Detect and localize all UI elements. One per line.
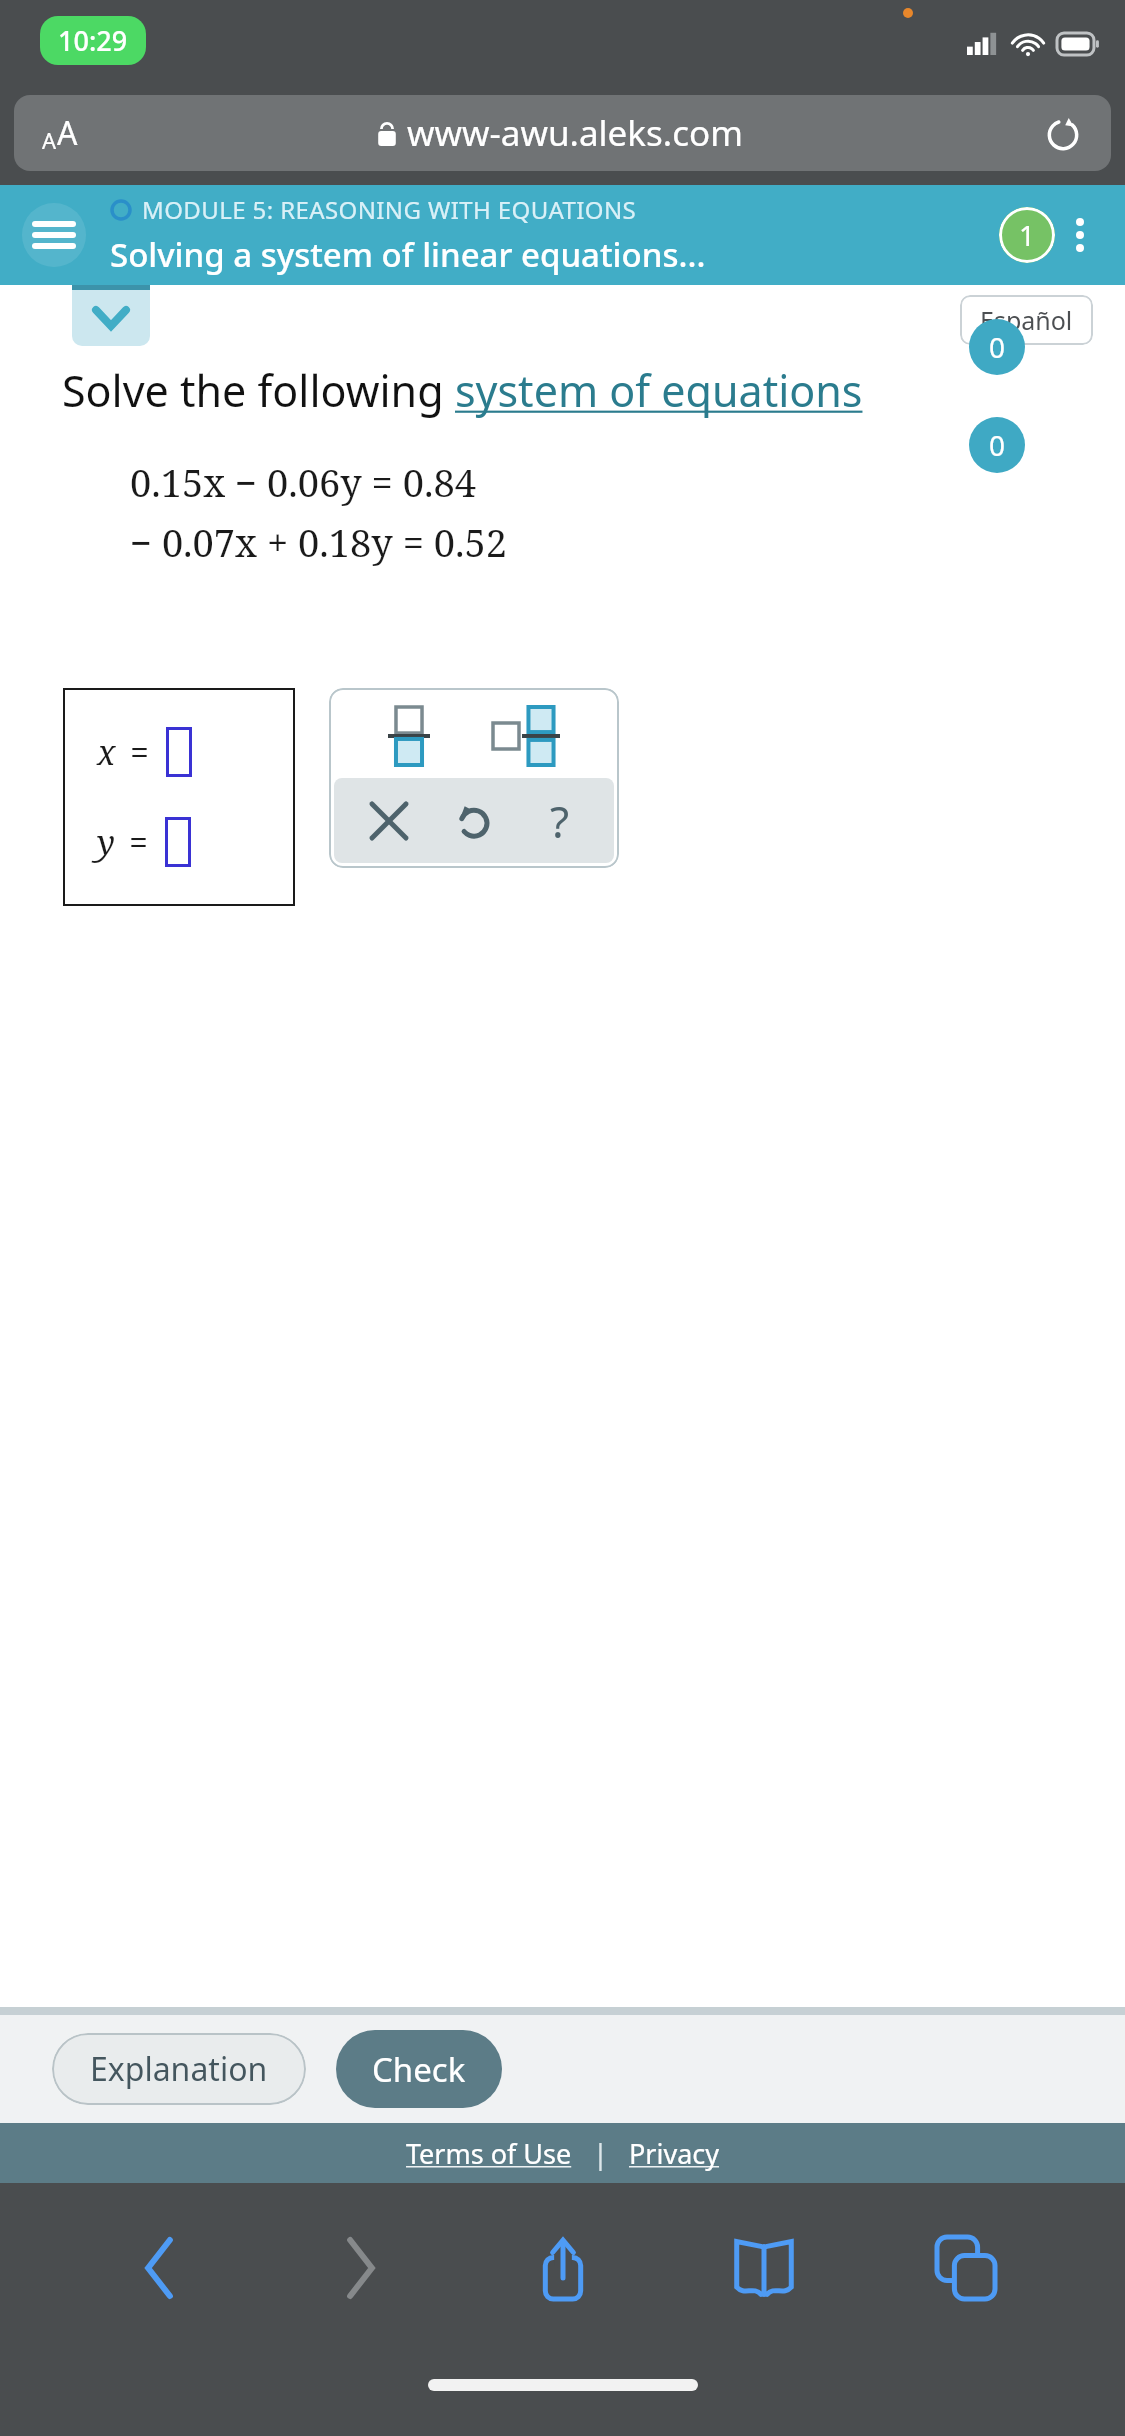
button[interactable]: 0 (969, 319, 1025, 375)
button[interactable]: Share (520, 2225, 606, 2311)
button[interactable]: Español (980, 303, 1073, 337)
button[interactable]: 0 (969, 417, 1025, 473)
staticText: MODULE 5: REASONING WITH EQUATIONS (142, 193, 637, 226)
button[interactable]: 1 (999, 207, 1055, 263)
staticText: 0 (989, 328, 1006, 366)
staticText: 0 (989, 426, 1006, 464)
staticText: Solve the following (62, 361, 455, 420)
staticText: − 0.07x + 0.18y = 0.52 (130, 516, 507, 568)
button[interactable]: Bookmarks (721, 2225, 807, 2311)
button[interactable]: Back (116, 2225, 202, 2311)
button[interactable]: Forward (318, 2225, 404, 2311)
staticText: Solving a system of linear equations... (110, 232, 706, 277)
staticText: 0.15x − 0.06y = 0.84 (130, 456, 476, 508)
staticText: = (129, 819, 149, 865)
button[interactable] (166, 727, 192, 777)
button[interactable] (165, 817, 191, 867)
staticText: A (57, 111, 78, 155)
staticText: 1 (1019, 216, 1036, 254)
staticText: x (97, 729, 116, 775)
button[interactable]: Check (336, 2030, 502, 2108)
button[interactable]: Menu (22, 203, 86, 267)
button[interactable]: Expand (72, 290, 150, 346)
button[interactable]: Undo (443, 790, 505, 852)
button[interactable]: Privacy (629, 2135, 720, 2172)
button[interactable]: system of equations (455, 361, 863, 420)
button[interactable]: Explanation (52, 2033, 306, 2105)
button[interactable]: Tabs (923, 2225, 1009, 2311)
staticText: 10:29 (58, 22, 128, 59)
staticText: | (572, 2135, 629, 2172)
staticText: ? (550, 791, 570, 851)
button[interactable]: A (14, 95, 1111, 171)
button[interactable]: Fraction (380, 707, 438, 765)
button[interactable]: Clear (358, 790, 420, 852)
staticText: y (97, 819, 115, 865)
staticText: A (42, 125, 57, 155)
button[interactable]: Reload (1043, 113, 1083, 153)
button[interactable]: Terms of Use (406, 2135, 572, 2172)
staticText: Español (980, 303, 1073, 337)
staticText: Explanation (90, 2047, 268, 2091)
staticText: Check (372, 2047, 466, 2092)
staticText: = (130, 729, 150, 775)
button[interactable]: More options (1055, 210, 1105, 260)
button[interactable]: Help (529, 790, 591, 852)
staticText: www-awu.aleks.com (407, 109, 743, 157)
button[interactable]: Mixed number (484, 694, 568, 778)
